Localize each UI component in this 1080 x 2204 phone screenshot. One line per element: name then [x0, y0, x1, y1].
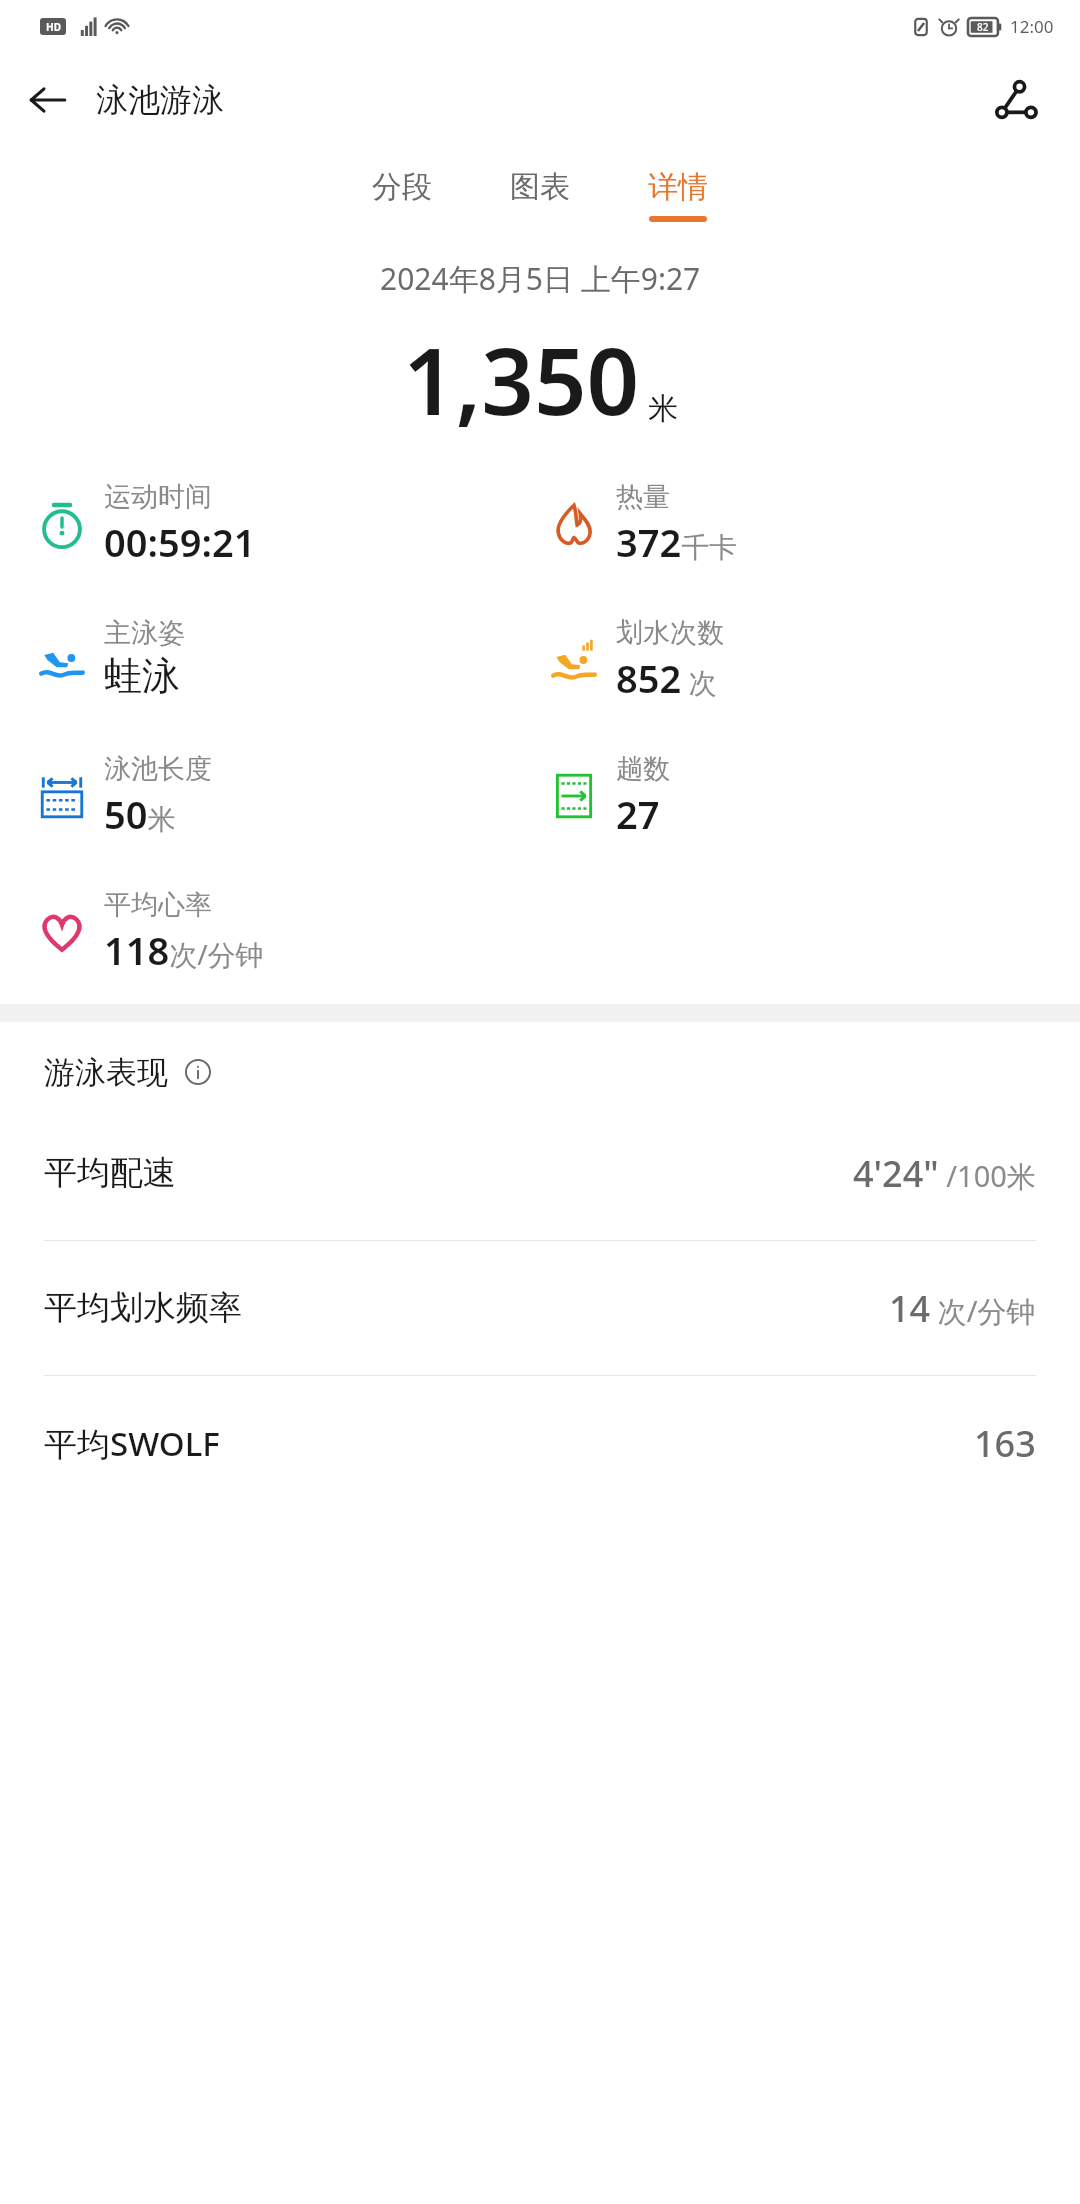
- staticText: 372千卡: [616, 516, 738, 568]
- button[interactable]: 分段: [360, 162, 444, 228]
- button[interactable]: Info: [178, 1052, 218, 1092]
- staticText: 00:59:21: [104, 516, 256, 568]
- button[interactable]: 详情: [636, 162, 720, 228]
- staticText: 热量: [616, 480, 670, 514]
- staticText: 趟数: [616, 752, 670, 786]
- button[interactable]: 平均配速: [0, 1106, 1080, 1240]
- staticText: 划水次数: [616, 616, 724, 650]
- staticText: 平均划水频率: [44, 1287, 242, 1329]
- staticText: 27: [616, 788, 660, 840]
- staticText: 泳池长度: [104, 752, 212, 786]
- staticText: 分段: [372, 168, 432, 206]
- staticText: 蛙泳: [104, 652, 180, 700]
- staticText: 米: [648, 390, 678, 428]
- button[interactable]: Back: [0, 52, 96, 148]
- staticText: 14 次/分钟: [889, 1284, 1036, 1333]
- button[interactable]: 图表: [498, 162, 582, 228]
- staticText: 平均心率: [104, 888, 212, 922]
- staticText: 118次/分钟: [104, 924, 264, 976]
- staticText: 1,350: [403, 317, 640, 442]
- staticText: 主泳姿: [104, 616, 185, 650]
- staticText: 12:00: [1010, 15, 1054, 38]
- staticText: 游泳表现: [44, 1053, 168, 1092]
- button[interactable]: Share: [976, 60, 1056, 140]
- staticText: 82: [977, 20, 989, 34]
- staticText: 运动时间: [104, 480, 212, 514]
- staticText: HD: [46, 20, 61, 34]
- staticText: 详情: [648, 168, 708, 206]
- staticText: 泳池游泳: [96, 80, 224, 120]
- staticText: 平均SWOLF: [44, 1421, 220, 1466]
- staticText: 163: [974, 1419, 1036, 1468]
- staticText: 4'24" /100米: [853, 1149, 1036, 1198]
- staticText: 图表: [510, 168, 570, 206]
- staticText: 2024年8月5日 上午9:27: [380, 258, 701, 299]
- button[interactable]: 平均SWOLF: [0, 1375, 1080, 1510]
- button[interactable]: 平均划水频率: [0, 1240, 1080, 1375]
- staticText: 平均配速: [44, 1152, 176, 1194]
- staticText: 852 次: [616, 652, 717, 704]
- staticText: 50米: [104, 788, 176, 840]
